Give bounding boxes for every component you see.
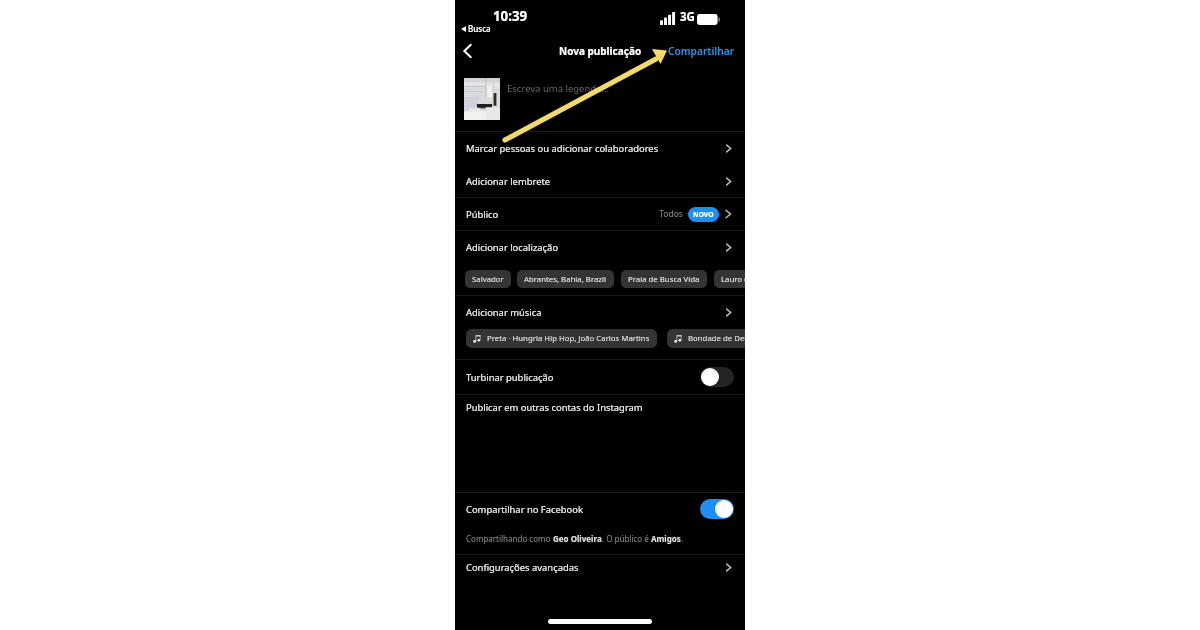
staticText: Amigos bbox=[651, 533, 681, 544]
button[interactable]: Salvador bbox=[465, 270, 511, 288]
staticText: Turbinar publicação bbox=[466, 371, 554, 384]
button[interactable]: Preta · Hungria Hip Hop, João Carlos Mar… bbox=[466, 329, 657, 348]
staticText: Escreva uma legenda... bbox=[507, 82, 610, 95]
staticText: Compartilhar no Facebook bbox=[466, 503, 583, 516]
button[interactable]: Compartilhar bbox=[658, 38, 745, 64]
staticText: . bbox=[681, 533, 684, 544]
button[interactable]: Turbinar publicação bbox=[455, 361, 745, 393]
staticText: Lauro de Freitas bbox=[721, 274, 745, 285]
button[interactable] bbox=[700, 367, 734, 387]
staticText: Bondade de Deus bbox=[688, 333, 745, 344]
staticText: Marcar pessoas ou adicionar colaboradore… bbox=[466, 142, 659, 155]
staticText: Adicionar música bbox=[466, 306, 542, 319]
button[interactable]: Abrantes, Bahia, Brazil bbox=[517, 270, 614, 288]
button[interactable]: Adicionar música bbox=[455, 296, 745, 328]
staticText: 3G bbox=[680, 9, 695, 25]
button[interactable]: Praia de Busca Vida bbox=[621, 270, 707, 288]
staticText: Geo Oliveira bbox=[553, 533, 602, 544]
staticText: . O público é bbox=[602, 533, 651, 544]
staticText: Abrantes, Bahia, Brazil bbox=[524, 274, 607, 285]
button[interactable]: Voltar bbox=[456, 39, 480, 63]
staticText: Nova publicação bbox=[559, 44, 642, 58]
staticText: Salvador bbox=[472, 274, 504, 285]
staticText: NOVO bbox=[693, 210, 714, 219]
staticText: Preta · Hungria Hip Hop, João Carlos Mar… bbox=[487, 333, 650, 344]
button[interactable]: Configurações avançadas bbox=[455, 551, 745, 583]
staticText: Adicionar localização bbox=[466, 241, 559, 254]
staticText: Praia de Busca Vida bbox=[628, 274, 700, 285]
button[interactable]: Lauro de Freitas bbox=[714, 270, 745, 288]
staticText: Compartilhar bbox=[668, 44, 735, 58]
staticText: Público bbox=[466, 208, 499, 221]
button[interactable]: Bondade de Deus bbox=[667, 329, 745, 348]
button[interactable]: Adicionar localização bbox=[455, 231, 745, 263]
staticText: 10:39 bbox=[493, 7, 528, 25]
button[interactable]: Marcar pessoas ou adicionar colaboradore… bbox=[455, 132, 745, 164]
button[interactable]: Publicar em outras contas do Instagram bbox=[455, 391, 745, 423]
staticText: Compartilhando como bbox=[466, 533, 553, 544]
staticText: Configurações avançadas bbox=[466, 561, 579, 574]
staticText: Publicar em outras contas do Instagram bbox=[466, 401, 643, 414]
button[interactable]: Público bbox=[455, 198, 745, 230]
staticText: Adicionar lembrete bbox=[466, 175, 551, 188]
button[interactable]: Adicionar lembrete bbox=[455, 165, 745, 197]
button[interactable]: Compartilhar no Facebook bbox=[455, 493, 745, 525]
staticText: Busca bbox=[468, 23, 491, 34]
staticText: Todos bbox=[659, 208, 683, 220]
button[interactable]: Escreva uma legenda... bbox=[455, 66, 745, 130]
button[interactable] bbox=[700, 499, 734, 519]
